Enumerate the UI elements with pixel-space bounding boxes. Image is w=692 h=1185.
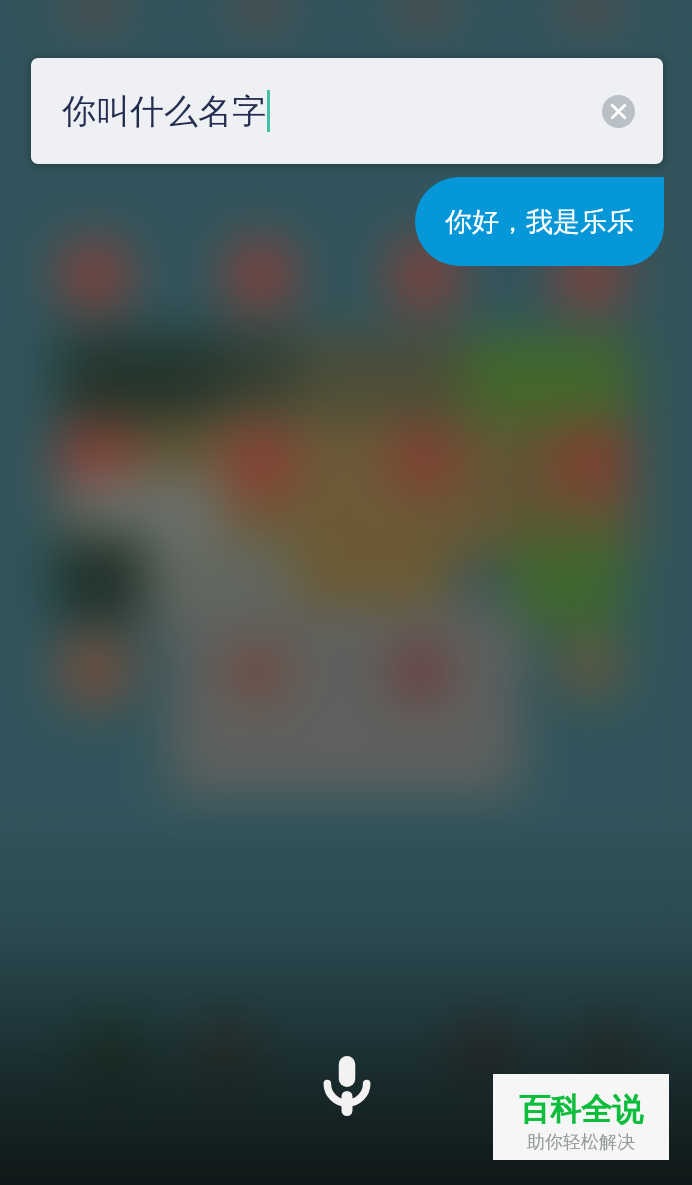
button[interactable]: Voice input [312, 1046, 382, 1126]
staticText: 助你轻松解决 [527, 1131, 635, 1154]
button[interactable]: 你叫什么名字 [31, 58, 663, 164]
staticText: 你叫什么名字 [62, 90, 266, 133]
staticText: 百科全说 [519, 1090, 643, 1129]
button[interactable]: Clear text [602, 95, 635, 128]
staticText: 你好，我是乐乐 [445, 205, 634, 239]
button[interactable]: 你好，我是乐乐 [415, 177, 664, 266]
